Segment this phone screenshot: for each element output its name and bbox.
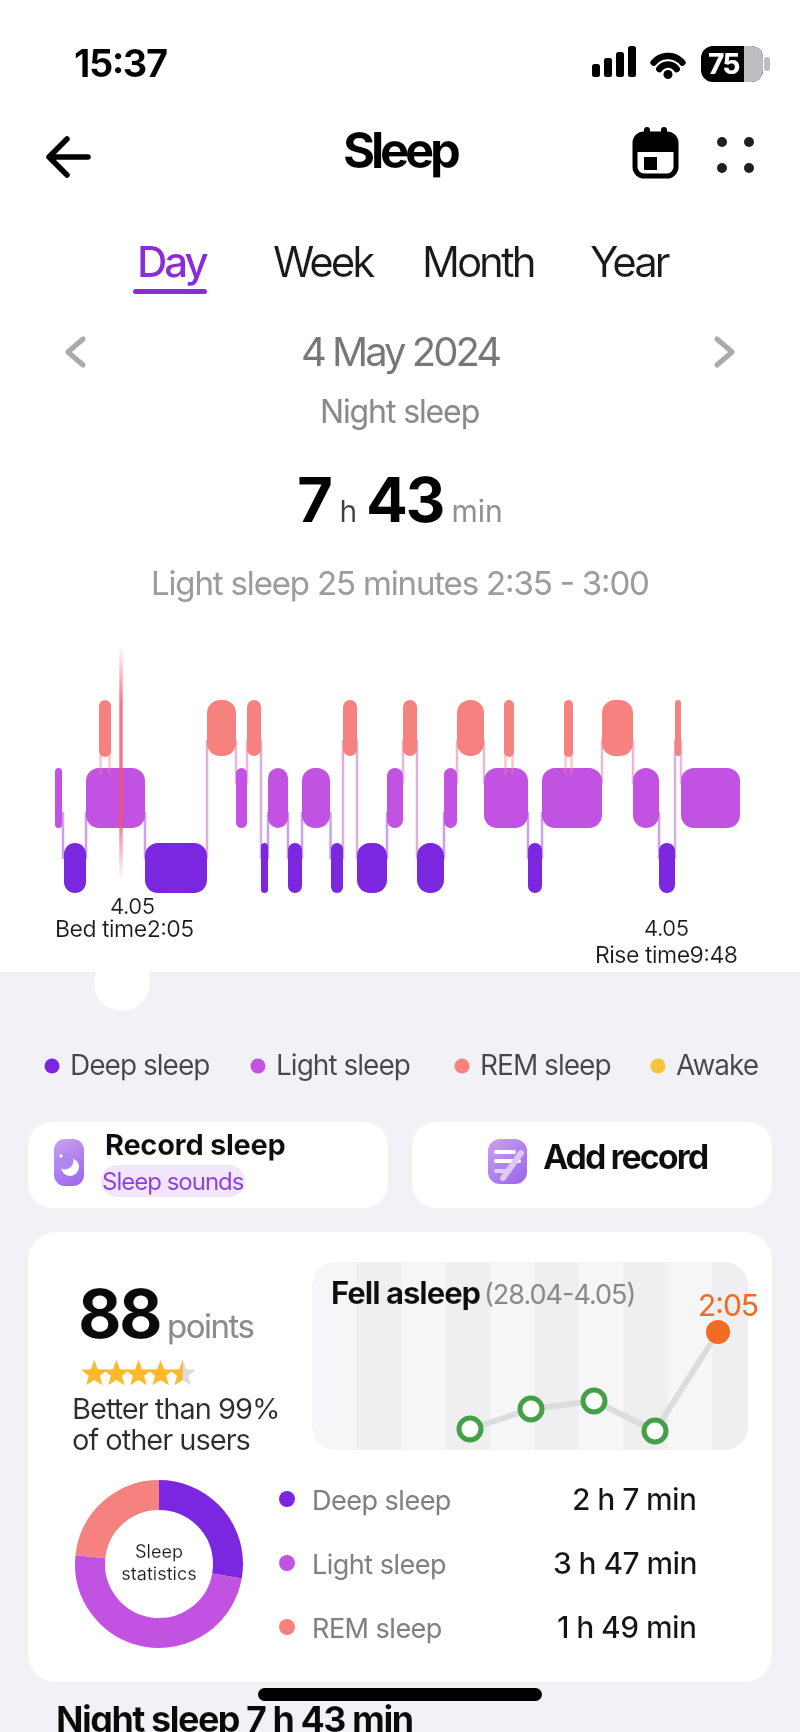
button[interactable] — [40, 130, 96, 186]
staticText: 4.05 — [110, 893, 155, 920]
staticText: Light sleep 25 minutes 2:35 - 3:00 — [151, 563, 649, 603]
staticText: Deep sleep — [70, 1048, 210, 1082]
staticText: Sleep — [343, 121, 457, 180]
staticText: 75 — [708, 47, 739, 81]
staticText: Week — [273, 236, 373, 287]
staticText: Year — [590, 236, 668, 287]
button[interactable] — [698, 326, 750, 378]
button[interactable] — [28, 1232, 772, 1682]
staticText: Record sleep — [105, 1127, 286, 1162]
staticText: min — [443, 493, 503, 529]
staticText: Rise time9:48 — [595, 941, 738, 969]
staticText: h — [331, 493, 366, 529]
staticText: Deep sleep — [312, 1484, 451, 1517]
staticText: REM sleep — [312, 1612, 442, 1645]
button[interactable] — [578, 230, 678, 290]
staticText: 4 May 2024 — [301, 327, 500, 375]
staticText: Sleep sounds — [102, 1167, 244, 1196]
staticText: 7 — [297, 462, 331, 537]
staticText: Add record — [543, 1136, 708, 1177]
staticText: 43 — [366, 462, 443, 537]
staticText: Night sleep — [320, 392, 480, 431]
staticText: 15:37 — [74, 40, 167, 86]
staticText: 4.05 — [644, 915, 689, 942]
staticText: Light sleep — [276, 1048, 410, 1082]
button[interactable] — [410, 230, 540, 290]
staticText: Awake — [676, 1048, 759, 1082]
button[interactable] — [262, 230, 382, 290]
button[interactable] — [120, 230, 220, 290]
button[interactable] — [626, 126, 686, 186]
staticText: Fell asleep — [331, 1274, 481, 1312]
staticText: of other users — [72, 1422, 250, 1457]
staticText: 1 h 49 min — [557, 1609, 697, 1645]
staticText: 3 h 47 min — [553, 1545, 697, 1581]
staticText: Light sleep — [312, 1548, 447, 1581]
staticText: (28.04-4.05) — [484, 1278, 636, 1311]
staticText: Night sleep 7 h 43 min — [56, 1697, 413, 1732]
button[interactable] — [706, 126, 766, 186]
button[interactable] — [412, 1122, 772, 1208]
staticText: points — [167, 1306, 254, 1346]
staticText: 2:05 — [698, 1287, 759, 1323]
button[interactable] — [50, 326, 102, 378]
staticText: REM sleep — [480, 1048, 611, 1082]
staticText: Day — [137, 236, 206, 287]
staticText: 2 h 7 min — [572, 1481, 697, 1517]
button[interactable] — [28, 1122, 388, 1208]
staticText: 88 — [78, 1273, 161, 1354]
staticText: Bed time2:05 — [55, 915, 194, 943]
staticText: Better than 99% — [72, 1391, 280, 1426]
staticText: Month — [422, 236, 534, 287]
staticText: Sleep statistics — [121, 1541, 197, 1584]
